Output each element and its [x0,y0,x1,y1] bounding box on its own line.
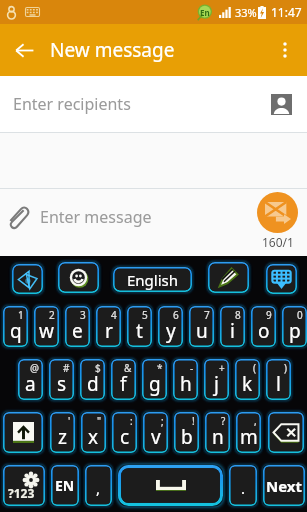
button[interactable] [251,306,276,347]
staticText: x [88,424,99,450]
button[interactable]: Space [118,465,223,506]
button[interactable]: English [113,267,192,292]
button[interactable] [173,359,198,400]
staticText: a [25,371,36,397]
staticText: d [87,371,99,397]
button[interactable] [236,412,261,453]
staticText: , [96,478,101,498]
staticText: h [180,371,192,397]
button[interactable] [229,465,257,506]
button[interactable] [49,359,74,400]
button[interactable] [18,359,43,400]
staticText: ' [68,414,71,428]
button[interactable] [96,306,121,347]
button[interactable] [189,306,214,347]
staticText: @ [30,361,39,375]
button[interactable]: Hide keyboard [266,264,297,294]
staticText: + [219,361,225,375]
staticText: g [149,371,161,397]
button[interactable] [235,359,260,400]
staticText: c [120,424,130,450]
staticText: 9 [266,308,272,322]
button[interactable]: Back [0,24,48,76]
button[interactable]: Backspace [268,412,304,453]
button[interactable] [50,412,75,453]
staticText: EN [55,476,75,495]
staticText: 7 [204,308,210,322]
staticText: q [10,318,22,344]
staticText: 2 [49,308,55,322]
button[interactable]: Voice input [12,264,43,294]
button[interactable] [266,359,291,400]
button[interactable]: Attach file [0,200,34,234]
staticText: ; [161,414,164,428]
staticText: t [136,318,143,344]
button[interactable] [81,412,106,453]
button[interactable] [282,306,307,347]
staticText: w [39,318,54,344]
staticText: z [58,424,67,450]
button[interactable]: Send message [257,192,298,233]
button[interactable] [65,306,90,347]
staticText: New message [50,37,175,63]
button[interactable]: Handwriting [208,262,249,293]
staticText: 1 [18,308,24,322]
staticText: b [181,424,193,450]
staticText: # [63,361,70,375]
staticText: ? [221,414,226,428]
button[interactable] [158,306,183,347]
button[interactable]: Shift [3,412,43,453]
button[interactable]: Pick contacts [265,88,297,120]
button[interactable] [112,412,137,453]
staticText: o [258,318,270,344]
staticText: v [151,424,161,450]
staticText: s [57,371,67,397]
staticText: $ [95,361,101,375]
staticText: ! [192,414,195,428]
button[interactable]: More options [263,24,307,76]
button[interactable] [111,359,136,400]
button[interactable] [205,412,230,453]
staticText: " [97,414,102,428]
staticText: i [230,318,235,344]
button[interactable] [127,306,152,347]
staticText: r [105,318,113,344]
staticText: 3 [80,308,86,322]
staticText: 0 [297,308,303,322]
button[interactable] [204,359,229,400]
button[interactable]: Change language [51,465,79,506]
staticText: - [190,361,194,375]
staticText: p [289,318,301,344]
staticText: En [200,7,210,18]
button[interactable] [80,359,105,400]
button[interactable] [220,306,245,347]
staticText: Enter recipients [13,93,131,115]
staticText: 33% [235,5,257,20]
staticText: 11:47 [271,4,302,20]
staticText: k [242,371,253,397]
staticText: 5 [142,308,148,322]
button[interactable] [85,465,112,506]
staticText: u [196,318,208,344]
button[interactable] [34,306,59,347]
staticText: e [72,318,83,344]
staticText: m [240,424,258,450]
button[interactable]: Emoji [58,262,99,293]
button[interactable]: Enter recipients [0,76,307,132]
staticText: Enter message [40,206,152,228]
staticText: 4 [111,308,117,322]
staticText: & [124,361,132,375]
staticText: 6 [173,308,179,322]
staticText: f [120,371,127,397]
button[interactable] [142,359,167,400]
staticText: ) [284,361,287,375]
button[interactable] [263,465,305,506]
button[interactable] [174,412,199,453]
staticText: 160/1 [262,234,294,250]
button[interactable] [143,412,168,453]
staticText: n [212,424,224,450]
staticText: y [166,318,176,344]
button[interactable] [3,306,28,347]
button[interactable]: Symbols [3,465,45,506]
staticText: . [241,478,246,498]
